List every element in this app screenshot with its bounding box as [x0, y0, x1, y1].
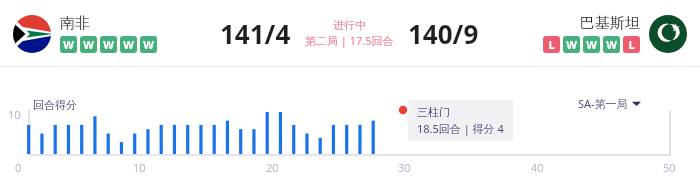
staticText: W: [606, 37, 617, 52]
other: South Africa: [13, 15, 51, 53]
staticText: W: [83, 37, 94, 52]
button[interactable]: W: [80, 36, 97, 53]
button[interactable]: W: [603, 36, 620, 53]
staticText: 10: [133, 160, 146, 175]
button[interactable]: W: [120, 36, 137, 53]
button[interactable]: South Africa: [13, 14, 220, 53]
staticText: W: [103, 37, 114, 52]
staticText: 40: [531, 160, 544, 175]
button[interactable]: W: [140, 36, 157, 53]
staticText: 20: [266, 160, 279, 175]
staticText: 南非: [60, 14, 90, 33]
button[interactable]: W: [563, 36, 580, 53]
staticText: 10: [8, 107, 21, 122]
staticText: SA-第一局: [578, 96, 628, 111]
staticText: W: [586, 37, 597, 52]
staticText: W: [123, 37, 134, 52]
staticText: L: [628, 37, 635, 52]
button[interactable]: 巴基斯坦: [479, 14, 687, 53]
button[interactable]: W: [60, 36, 77, 53]
staticText: 140/9: [408, 16, 479, 51]
button[interactable]: L: [623, 36, 640, 53]
button[interactable]: SA-第一局: [578, 96, 641, 111]
staticText: 141/4: [220, 16, 291, 51]
staticText: 第二局 | 17.5回合: [305, 33, 394, 48]
staticText: W: [566, 37, 577, 52]
other: Select innings: [632, 99, 641, 108]
staticText: 三柱门: [417, 105, 450, 119]
staticText: 50: [663, 160, 676, 175]
staticText: L: [548, 37, 555, 52]
staticText: W: [143, 37, 154, 52]
staticText: W: [63, 37, 74, 52]
staticText: 18.5回合 | 得分 4: [417, 121, 504, 136]
staticText: 进行中: [333, 18, 366, 32]
staticText: 回合得分: [33, 98, 77, 112]
button[interactable]: W: [100, 36, 117, 53]
staticText: 巴基斯坦: [580, 14, 640, 33]
staticText: 30: [398, 160, 411, 175]
staticText: 0: [15, 160, 22, 175]
button[interactable]: L: [543, 36, 560, 53]
button[interactable]: W: [583, 36, 600, 53]
other: Pakistan: [649, 15, 687, 53]
